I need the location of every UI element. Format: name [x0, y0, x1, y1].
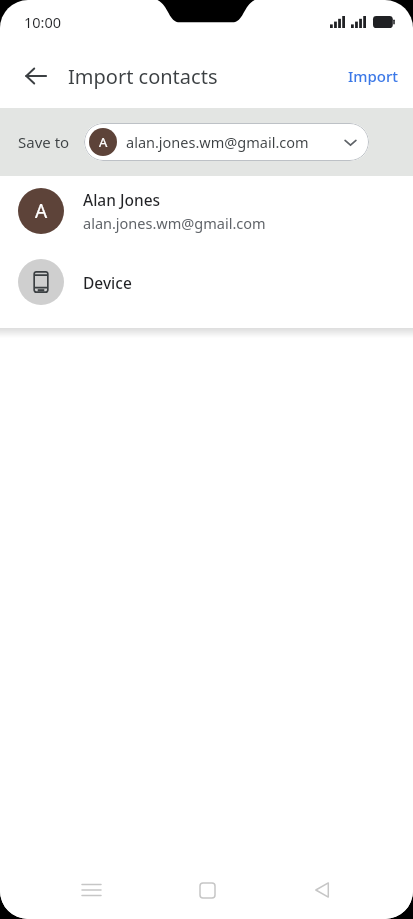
button[interactable]: A — [0, 176, 413, 246]
staticText: Import — [348, 66, 399, 86]
button[interactable]: Back — [14, 54, 58, 98]
button[interactable]: Back — [298, 866, 346, 914]
staticText: Save to — [18, 132, 70, 152]
button[interactable]: Recents — [67, 866, 115, 914]
staticText: 10:00 — [24, 12, 62, 32]
staticText: Import contacts — [68, 63, 218, 90]
button[interactable]: Device — [0, 246, 413, 318]
staticText: Device — [83, 272, 132, 293]
staticText: A — [35, 198, 48, 224]
staticText: A — [99, 133, 108, 151]
staticText: alan.jones.wm@gmail.com — [126, 132, 342, 152]
button[interactable]: Home — [183, 866, 231, 914]
staticText: alan.jones.wm@gmail.com — [83, 213, 266, 233]
staticText: Alan Jones — [83, 189, 161, 210]
button[interactable]: Import — [334, 58, 413, 94]
button[interactable]: A — [84, 123, 369, 161]
